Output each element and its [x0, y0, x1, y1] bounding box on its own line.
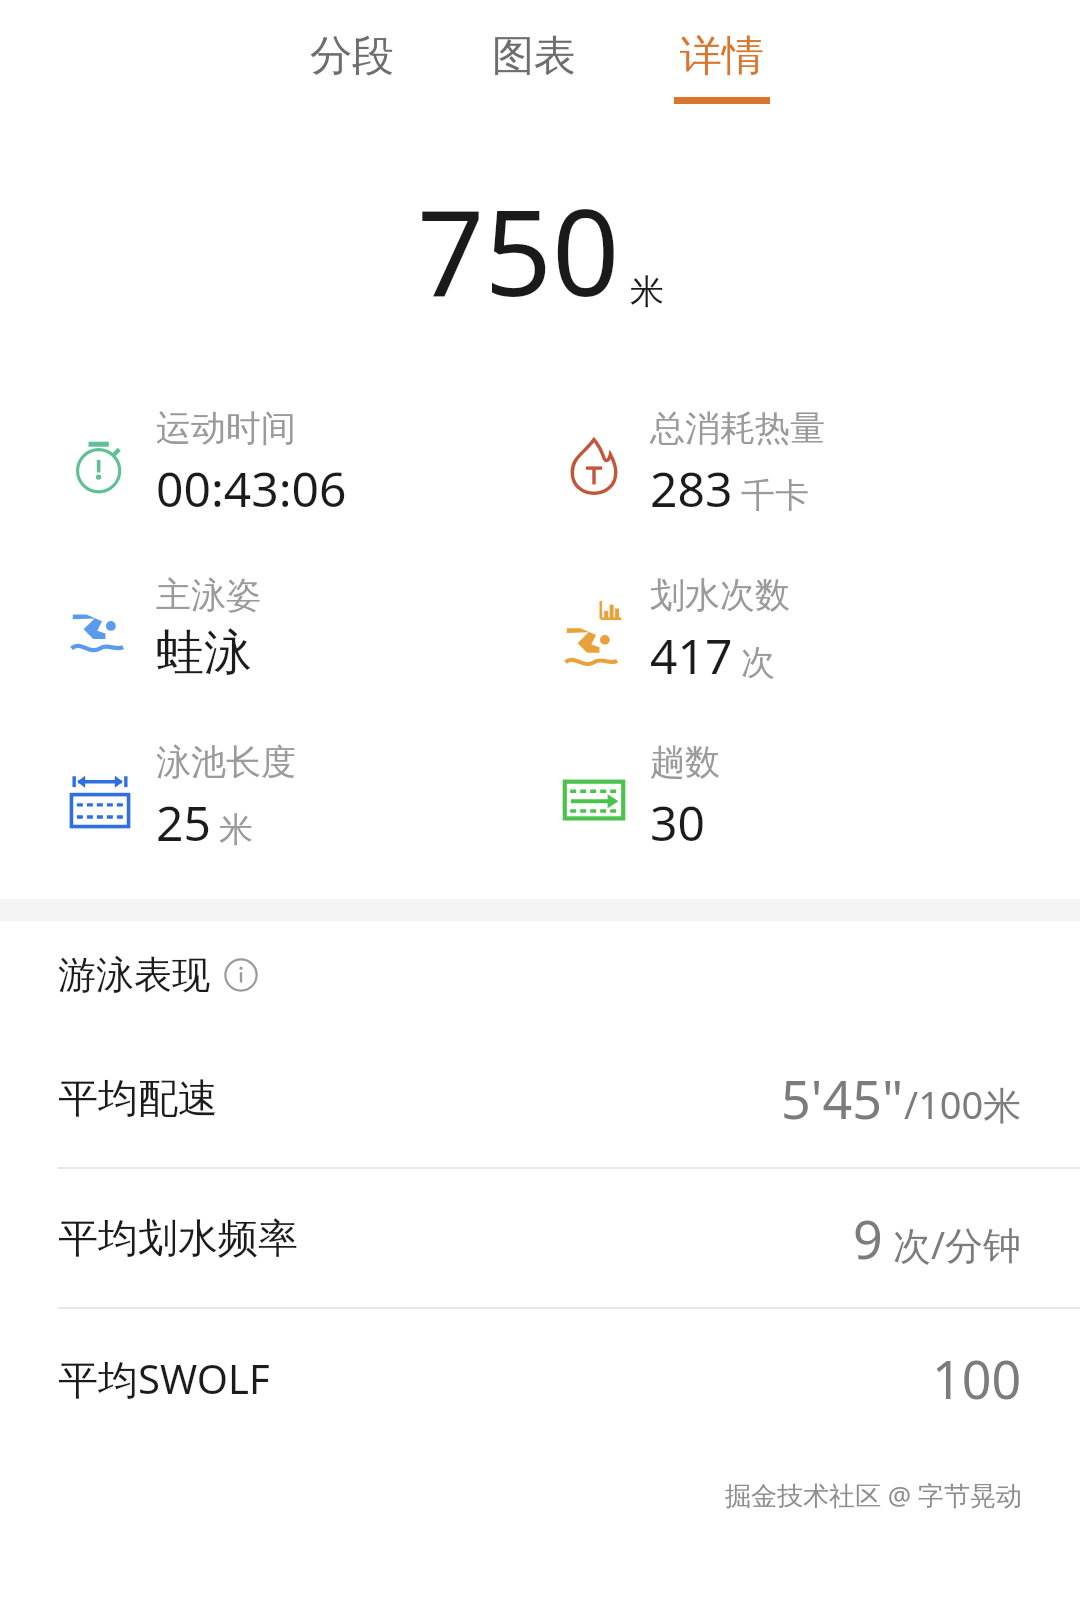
staticText: 详情	[680, 30, 764, 83]
button[interactable]: 平均划水频率	[0, 1169, 1080, 1307]
other: Calories	[556, 426, 632, 502]
staticText: 图表	[492, 30, 576, 83]
staticText: 283	[650, 456, 733, 521]
staticText: 运动时间	[156, 406, 296, 450]
staticText: 趟数	[650, 740, 720, 784]
staticText: 25	[156, 790, 211, 855]
other: Pool length	[62, 760, 138, 836]
staticText: 蛙泳	[156, 623, 252, 683]
button[interactable]: Duration	[0, 406, 540, 521]
button[interactable]: Pool length	[0, 740, 540, 855]
staticText: 米	[219, 808, 253, 851]
button[interactable]: Strokes	[540, 573, 1080, 688]
staticText: 掘金技术社区 @ 字节晃动	[725, 1477, 1022, 1513]
staticText: 100	[932, 1343, 1022, 1414]
staticText: 5'45"	[781, 1063, 904, 1134]
staticText: /100米	[904, 1078, 1022, 1130]
button[interactable]: 分段	[282, 0, 422, 134]
button[interactable]: Info	[224, 958, 258, 992]
staticText: 米	[630, 270, 664, 313]
button[interactable]: 平均SWOLF	[0, 1309, 1080, 1447]
staticText: 主泳姿	[156, 573, 261, 617]
staticText: 30	[650, 790, 705, 855]
staticText: 417	[650, 623, 733, 688]
staticText: 分段	[310, 30, 394, 83]
staticText: 次	[741, 641, 775, 684]
staticText: 平均配速	[58, 1073, 218, 1123]
other: Strokes	[556, 593, 632, 669]
button[interactable]: 平均配速	[0, 1029, 1080, 1167]
staticText: 总消耗热量	[650, 406, 825, 450]
staticText: 次/分钟	[883, 1218, 1022, 1270]
staticText: 平均划水频率	[58, 1213, 298, 1263]
staticText: 00:43:06	[156, 456, 347, 521]
button[interactable]: Laps	[540, 740, 1080, 855]
button[interactable]: Calories	[540, 406, 1080, 521]
staticText: 泳池长度	[156, 740, 296, 784]
other: Stroke	[62, 590, 138, 666]
staticText: 游泳表现	[58, 951, 210, 999]
staticText: 9	[853, 1203, 883, 1274]
other: Duration	[62, 426, 138, 502]
staticText: 750	[417, 170, 620, 331]
other: Laps	[556, 760, 632, 836]
button[interactable]: 详情	[646, 0, 798, 134]
staticText: 划水次数	[650, 573, 790, 617]
button[interactable]: 图表	[464, 0, 604, 134]
button[interactable]: Stroke	[0, 573, 540, 683]
staticText: 千卡	[741, 474, 809, 517]
staticText: 平均SWOLF	[58, 1351, 270, 1406]
